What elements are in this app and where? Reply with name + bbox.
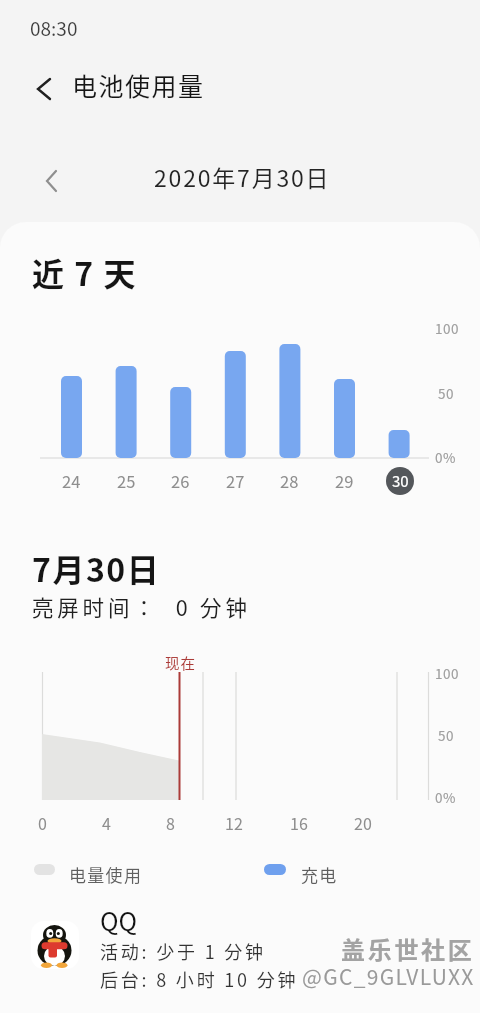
staticText: 26 [171, 469, 190, 493]
staticText: 7月30日 [32, 545, 161, 591]
staticText: 8 [166, 811, 175, 834]
staticText: 2020年7月30日 [154, 160, 331, 193]
staticText: 29 [335, 469, 354, 493]
staticText: QQ [100, 902, 138, 938]
staticText: 12 [225, 811, 243, 834]
staticText: 近 7 天 [32, 249, 137, 295]
staticText: 后台: 8 小时 10 分钟 [100, 966, 299, 992]
staticText: 30 [392, 470, 409, 492]
staticText: 亮屏时间： 0 分钟 [32, 591, 251, 622]
staticText: 0% [435, 447, 456, 467]
staticText: 电量使用 [69, 862, 143, 887]
staticText: 50 [438, 383, 454, 403]
staticText: 50 [438, 725, 454, 745]
staticText: 27 [226, 469, 245, 493]
staticText: 4 [102, 811, 111, 834]
staticText: @GC_9GLVLUXX [302, 961, 475, 991]
staticText: 24 [62, 469, 81, 493]
staticText: 08:30 [30, 14, 78, 42]
staticText: 25 [117, 469, 136, 493]
staticText: 100 [435, 318, 459, 338]
staticText: 充电 [301, 862, 338, 887]
button[interactable]: QQ [0, 900, 480, 1000]
staticText: 100 [435, 663, 459, 683]
staticText: 电池使用量 [72, 67, 205, 103]
button[interactable] [24, 64, 68, 108]
staticText: 20 [354, 811, 372, 834]
staticText: 0 [38, 811, 47, 834]
staticText: 0% [435, 787, 456, 807]
button[interactable]: 30 [386, 467, 414, 495]
button[interactable] [30, 158, 74, 202]
staticText: 盖乐世社区 [341, 931, 475, 966]
staticText: 活动: 少于 1 分钟 [100, 938, 266, 964]
staticText: 现在 [165, 652, 196, 673]
staticText: 16 [290, 811, 308, 834]
button[interactable]: 电池使用量 [64, 64, 294, 108]
staticText: 28 [280, 469, 299, 493]
